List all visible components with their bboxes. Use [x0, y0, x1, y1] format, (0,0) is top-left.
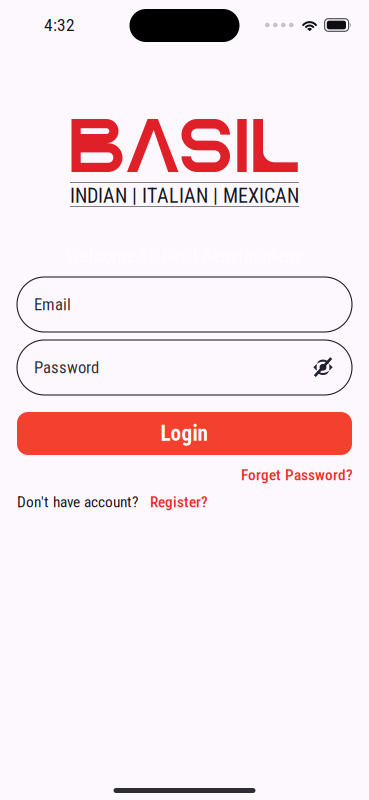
button[interactable]: Register?: [150, 493, 208, 511]
staticText: Password: [34, 358, 99, 377]
staticText: Email: [34, 295, 71, 314]
staticText: Login: [160, 421, 208, 446]
staticText: Register?: [150, 493, 208, 511]
staticText: INDIAN | ITALIAN | MEXICAN: [70, 184, 299, 208]
button[interactable]: Forget Password?: [241, 466, 353, 484]
button[interactable]: Show password: [313, 358, 352, 377]
staticText: 4:32: [44, 15, 75, 35]
button[interactable]: Login: [17, 412, 352, 455]
staticText: Forget Password?: [241, 466, 353, 484]
staticText: Don't have account?: [17, 493, 138, 511]
